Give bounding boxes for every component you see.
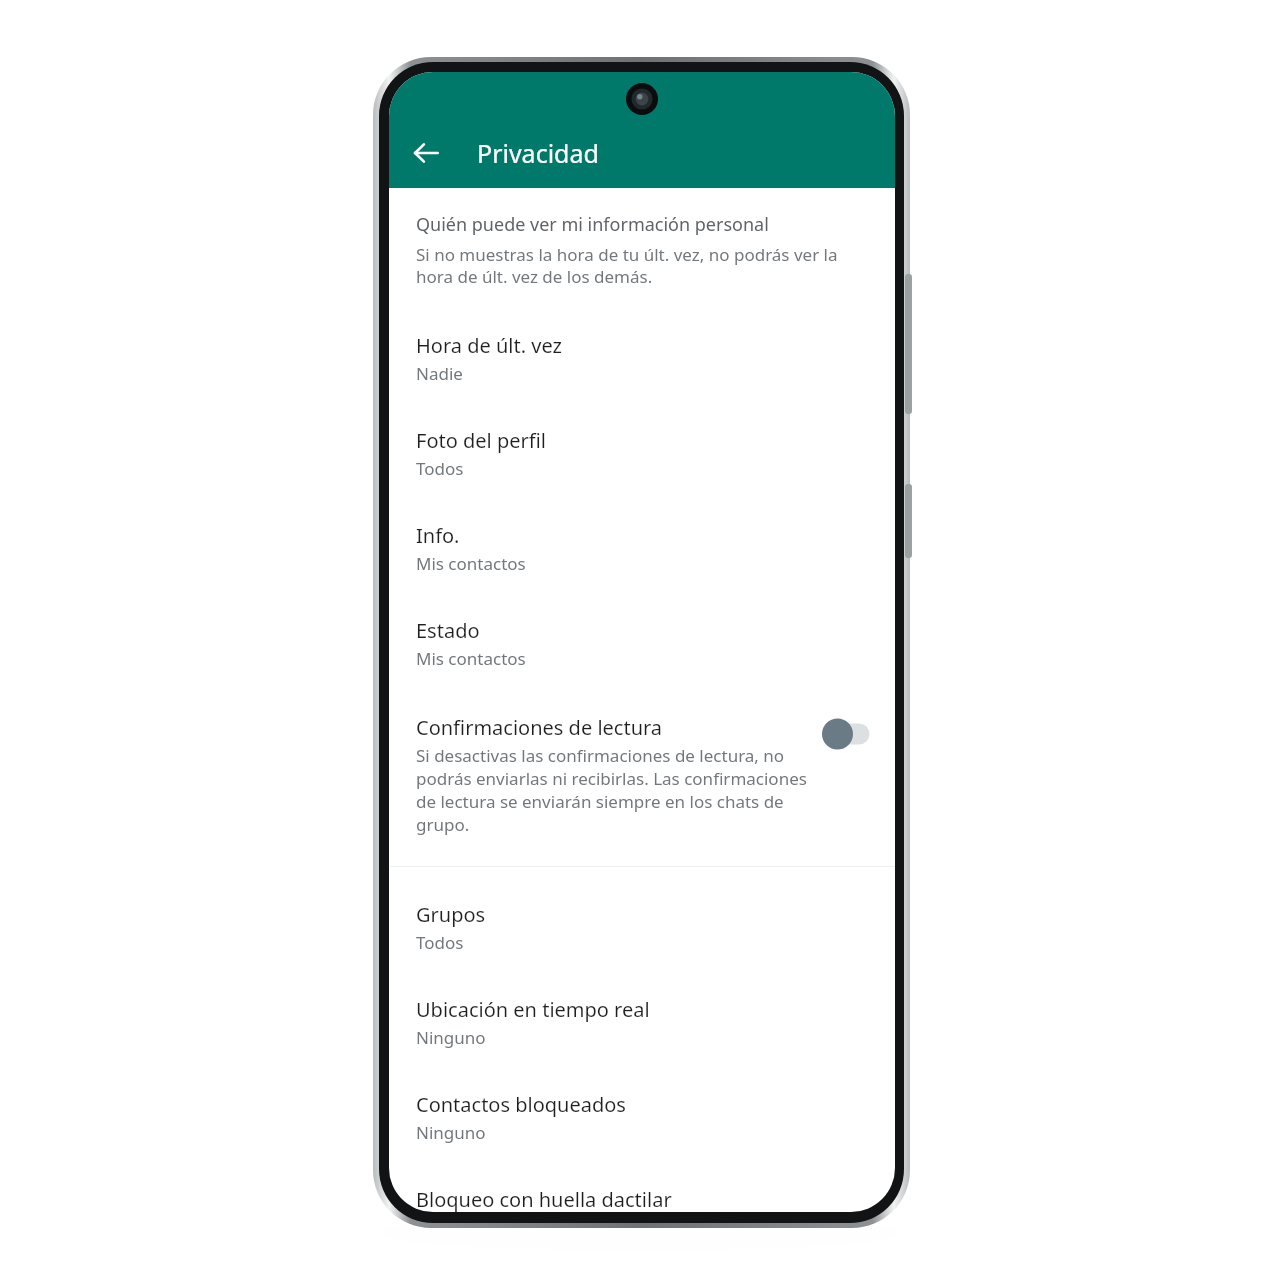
staticText: Hora de últ. vez — [416, 332, 562, 359]
staticText: Si no muestras la hora de tu últ. vez, n… — [416, 243, 873, 288]
button[interactable]: Confirmaciones de lectura — [389, 670, 895, 836]
staticText: Info. — [416, 522, 460, 549]
staticText: Mis contactos — [416, 647, 526, 670]
staticText: Grupos — [416, 901, 486, 928]
staticText: Quién puede ver mi información personal — [416, 212, 769, 237]
button[interactable]: Estado — [389, 575, 895, 670]
button[interactable]: Grupos — [389, 867, 895, 954]
staticText: Foto del perfil — [416, 427, 546, 454]
button[interactable]: Ubicación en tiempo real — [389, 954, 895, 1049]
staticText: Si desactivas las confirmaciones de lect… — [416, 744, 807, 836]
button[interactable]: Contactos bloqueados — [389, 1049, 895, 1144]
staticText: Ninguno — [416, 1121, 486, 1144]
staticText: Todos — [416, 457, 464, 480]
staticText: Confirmaciones de lectura — [416, 714, 663, 741]
staticText: Bloqueo con huella dactilar — [416, 1186, 672, 1212]
button[interactable]: Bloqueo con huella dactilar — [389, 1144, 895, 1212]
staticText: Ninguno — [416, 1026, 486, 1049]
button[interactable]: Confirmaciones de lectura — [819, 714, 875, 754]
staticText: Mis contactos — [416, 552, 526, 575]
button[interactable]: Info. — [389, 480, 895, 575]
button[interactable]: Atrás — [399, 126, 453, 180]
button[interactable]: Foto del perfil — [389, 385, 895, 480]
staticText: Todos — [416, 931, 464, 954]
staticText: Contactos bloqueados — [416, 1091, 626, 1118]
staticText: Ubicación en tiempo real — [416, 996, 650, 1023]
staticText: Privacidad — [477, 136, 599, 170]
staticText: Estado — [416, 617, 480, 644]
button[interactable]: Hora de últ. vez — [389, 288, 895, 385]
staticText: Nadie — [416, 362, 463, 385]
